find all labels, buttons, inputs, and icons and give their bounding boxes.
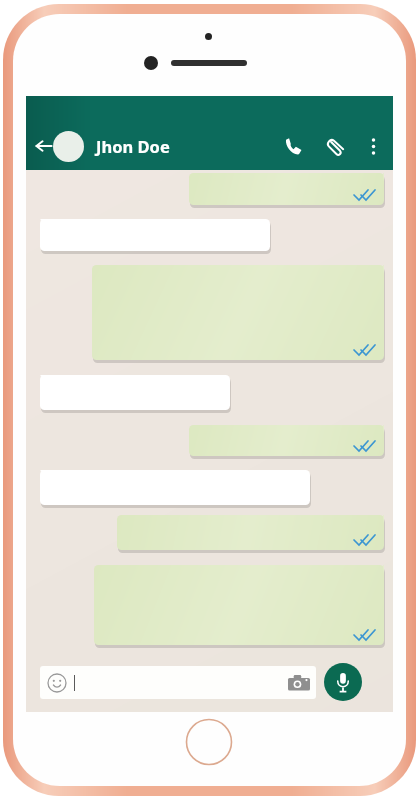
button[interactable]: Jhon Doe bbox=[96, 135, 170, 157]
button[interactable]: Emoji bbox=[40, 666, 316, 699]
button[interactable]: Back bbox=[31, 129, 57, 163]
button[interactable] bbox=[180, 173, 384, 210]
button[interactable]: Call bbox=[276, 128, 310, 164]
button[interactable] bbox=[40, 219, 279, 256]
button[interactable]: Home bbox=[185, 718, 233, 766]
button[interactable] bbox=[108, 515, 384, 555]
button[interactable]: Emoji bbox=[47, 673, 67, 693]
button[interactable] bbox=[40, 470, 319, 510]
button[interactable] bbox=[40, 375, 239, 415]
button[interactable]: Camera bbox=[288, 674, 310, 692]
button[interactable]: Attach bbox=[319, 128, 353, 164]
button[interactable]: Contact photo bbox=[53, 131, 84, 162]
button[interactable] bbox=[85, 565, 384, 650]
button[interactable]: More options bbox=[359, 128, 387, 164]
button[interactable] bbox=[83, 265, 384, 365]
button[interactable]: Record voice message bbox=[324, 663, 362, 701]
button[interactable] bbox=[180, 425, 384, 461]
